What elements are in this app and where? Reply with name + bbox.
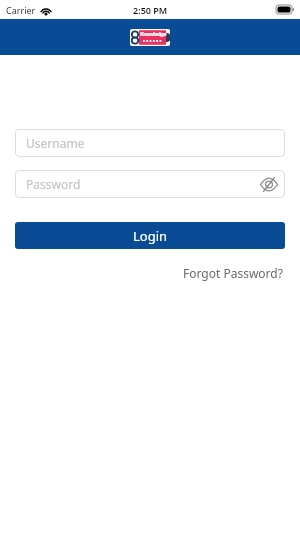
staticText: Carrier — [6, 4, 36, 16]
staticText: Password — [26, 176, 81, 192]
button[interactable]: Password — [15, 170, 285, 198]
button[interactable]: Username — [15, 129, 285, 157]
staticText: Login — [133, 227, 168, 245]
staticText: Username — [26, 135, 85, 151]
button[interactable]: Forgot Password? — [183, 265, 283, 281]
staticText: Knowledge — [140, 30, 166, 37]
button[interactable]: Login — [15, 222, 285, 249]
staticText: 2:50 PM — [133, 4, 168, 16]
